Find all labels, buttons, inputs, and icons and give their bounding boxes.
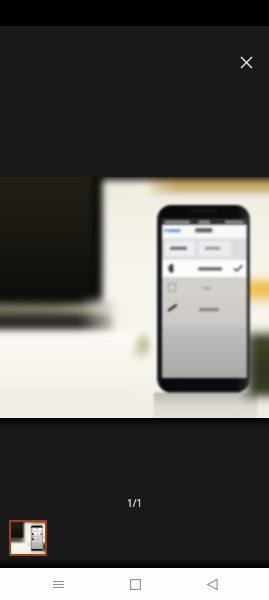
- staticText: 1/1: [127, 496, 143, 510]
- button[interactable]: Back: [189, 568, 235, 600]
- button[interactable]: Recent apps: [35, 568, 81, 600]
- button[interactable]: [0, 177, 269, 418]
- button[interactable]: Photo thumbnail: [11, 522, 45, 554]
- button[interactable]: Close: [232, 48, 260, 76]
- button[interactable]: Home: [112, 568, 158, 600]
